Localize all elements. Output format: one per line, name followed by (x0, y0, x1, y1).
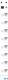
button[interactable] (1, 51, 7, 59)
button[interactable] (1, 27, 7, 35)
button[interactable] (1, 59, 7, 67)
button[interactable] (1, 35, 7, 43)
button[interactable]: Account (0, 5, 2, 7)
button[interactable]: Profile (0, 75, 8, 80)
button[interactable] (1, 11, 7, 19)
button[interactable] (1, 67, 7, 75)
button[interactable] (1, 43, 7, 51)
button[interactable] (1, 19, 7, 27)
button[interactable]: Home (0, 75, 8, 80)
button[interactable]: Search (0, 75, 8, 80)
